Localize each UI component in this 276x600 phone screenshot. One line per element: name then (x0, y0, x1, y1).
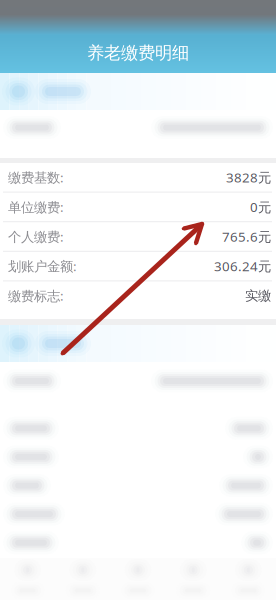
staticText: 养老缴费明细 (87, 42, 189, 64)
staticText: 个人缴费: (8, 228, 64, 245)
staticText: 划账户金额: (8, 257, 77, 275)
staticText: 缴费标志: (8, 287, 64, 304)
button[interactable]: 养老缴费明细 (0, 35, 276, 73)
staticText: 缴费基数: (8, 168, 64, 186)
staticText: 实缴 (245, 287, 271, 304)
staticText: 306.24元 (214, 257, 271, 275)
staticText: 单位缴费: (8, 198, 64, 216)
staticText: 3828元 (226, 168, 271, 186)
staticText: 0元 (250, 198, 271, 216)
staticText: 765.6元 (222, 228, 271, 245)
